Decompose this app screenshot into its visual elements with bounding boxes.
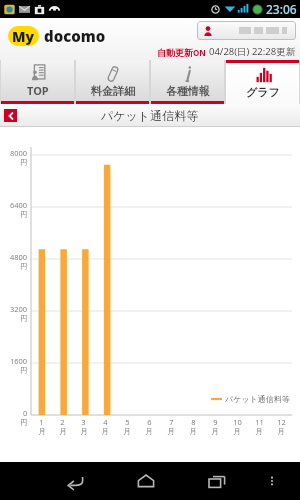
button[interactable]: TOP — [1, 60, 74, 104]
staticText: 月 — [59, 427, 67, 436]
staticText: 23:06 — [266, 1, 297, 17]
staticText: 9 — [213, 417, 218, 427]
staticText: 1600 — [10, 356, 28, 366]
staticText: 円 — [20, 210, 28, 219]
staticText: 月 — [233, 427, 241, 436]
staticText: 自動更新 — [157, 47, 193, 58]
button[interactable]: Account — [197, 21, 296, 40]
staticText: TOP — [27, 83, 49, 98]
staticText: 月 — [167, 427, 175, 436]
staticText: 10 — [233, 417, 242, 427]
button[interactable]: More options — [256, 462, 288, 500]
staticText: 月 — [189, 427, 197, 436]
staticText: ON — [193, 47, 206, 58]
staticText: 月 — [101, 427, 109, 436]
staticText: 月 — [255, 427, 263, 436]
staticText: パケット通信料等 — [101, 108, 199, 123]
staticText: 0 — [23, 408, 28, 418]
staticText: My — [12, 27, 35, 46]
button[interactable]: 料金詳細 — [76, 60, 149, 104]
staticText: 各種情報 — [166, 84, 210, 98]
staticText: 料金詳細 — [91, 84, 135, 98]
staticText: グラフ — [246, 85, 280, 99]
button[interactable]: Recent apps — [194, 462, 240, 500]
staticText: 円 — [20, 314, 28, 323]
staticText: 4 — [103, 417, 108, 427]
staticText: 6 — [147, 417, 152, 427]
staticText: 8000 — [10, 148, 28, 158]
button[interactable]: Home — [123, 462, 169, 500]
staticText: 月 — [123, 427, 131, 436]
staticText: 11 — [255, 417, 264, 427]
staticText: 8 — [191, 417, 196, 427]
staticText: 月 — [145, 427, 153, 436]
staticText: 1 — [39, 417, 44, 427]
staticText: 4800 — [10, 252, 28, 262]
button[interactable]: Back — [4, 109, 17, 122]
button[interactable]: Back — [52, 462, 98, 500]
staticText: 月 — [277, 427, 285, 436]
button[interactable]: 各種情報 — [151, 60, 224, 104]
staticText: 月 — [38, 427, 46, 436]
staticText: 7 — [169, 417, 174, 427]
staticText: docomo — [44, 26, 106, 46]
staticText: 12 — [277, 417, 286, 427]
staticText: 2 — [60, 417, 65, 427]
staticText: 5 — [125, 417, 130, 427]
staticText: 月 — [211, 427, 219, 436]
staticText: 円 — [20, 262, 28, 271]
staticText: 3200 — [10, 304, 28, 314]
staticText: 円 — [20, 366, 28, 375]
staticText: 月 — [80, 427, 88, 436]
staticText: 6400 — [10, 200, 28, 210]
staticText: 円 — [20, 158, 28, 167]
staticText: 04/28(日) 22:28更新 — [209, 45, 296, 58]
staticText: 3 — [81, 417, 86, 427]
button[interactable]: グラフ — [226, 60, 299, 104]
staticText: 円 — [20, 418, 28, 427]
staticText: パケット通信料等 — [225, 394, 290, 404]
